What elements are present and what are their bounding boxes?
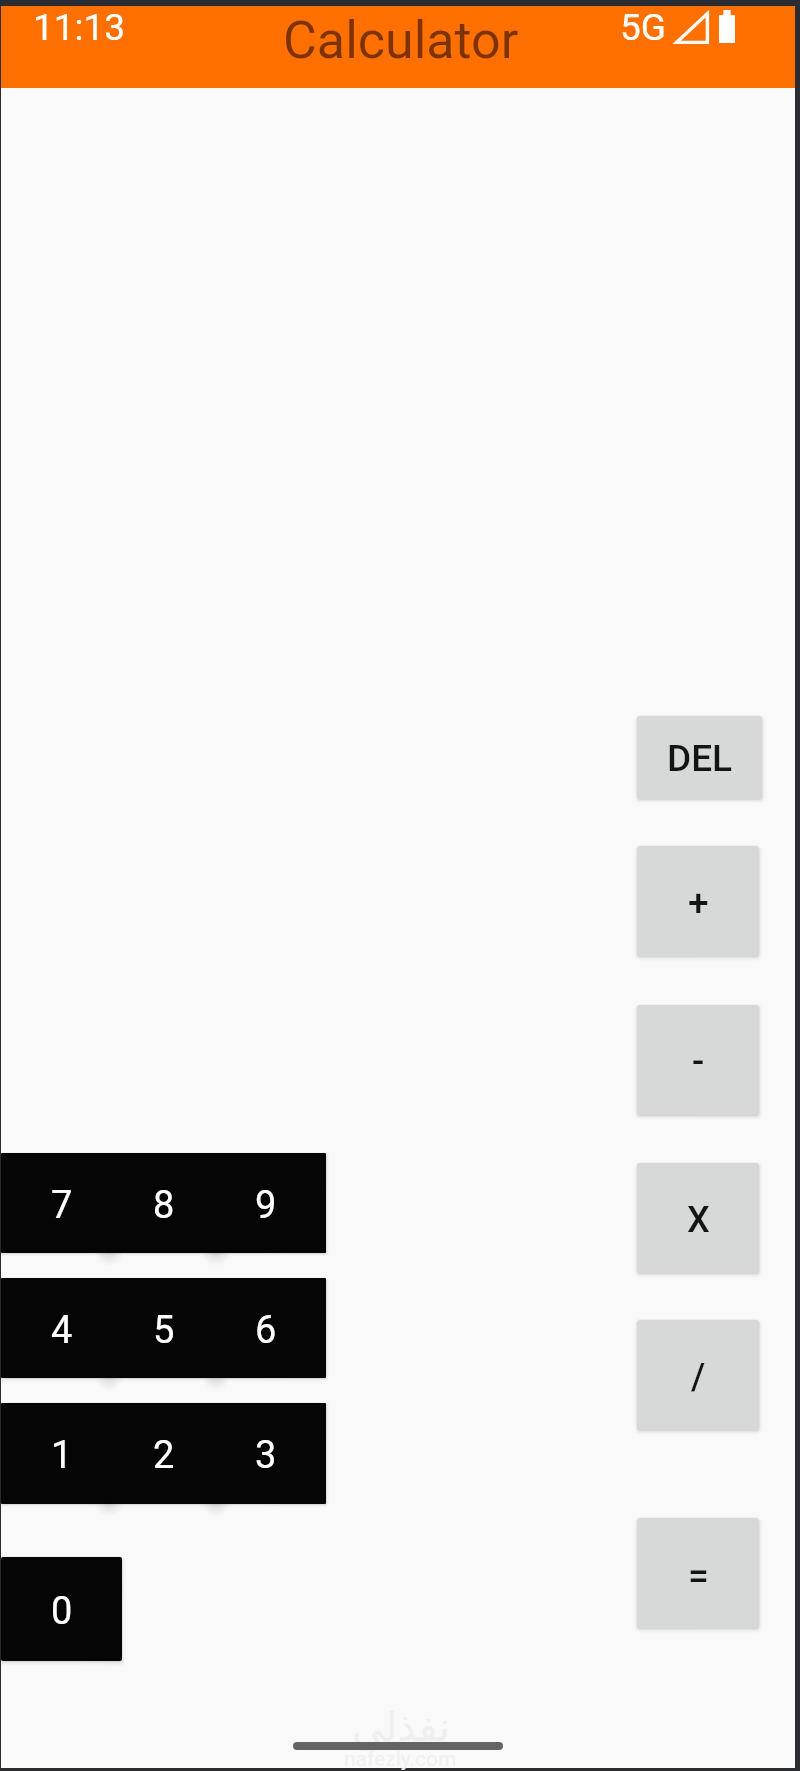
staticText: نفذلي: [352, 1704, 450, 1751]
button[interactable]: 8: [113, 1153, 215, 1253]
staticText: 11:13: [33, 6, 126, 49]
staticText: +: [688, 882, 709, 925]
staticText: DEL: [667, 737, 733, 780]
staticText: 4: [51, 1308, 73, 1353]
button[interactable]: 1: [11, 1403, 113, 1504]
staticText: 1: [51, 1433, 73, 1478]
button[interactable]: 7: [11, 1153, 113, 1253]
staticText: =: [688, 1554, 709, 1597]
button[interactable]: /: [637, 1320, 759, 1430]
staticText: 3: [255, 1433, 277, 1478]
other: Battery full: [719, 10, 735, 43]
button[interactable]: DEL: [637, 716, 762, 799]
staticText: X: [687, 1199, 710, 1241]
staticText: 7: [51, 1183, 73, 1228]
staticText: /: [691, 1356, 706, 1398]
button[interactable]: 9: [215, 1153, 317, 1253]
staticText: nafezly.com: [344, 1747, 457, 1771]
button[interactable]: 5: [113, 1278, 215, 1378]
button[interactable]: 6: [215, 1278, 317, 1378]
staticText: 8: [153, 1183, 175, 1228]
button[interactable]: X: [637, 1163, 759, 1273]
button[interactable]: 2: [113, 1403, 215, 1504]
staticText: -: [692, 1039, 705, 1082]
staticText: 5G: [620, 6, 666, 49]
button[interactable]: 3: [215, 1403, 317, 1504]
staticText: 9: [255, 1183, 277, 1228]
button[interactable]: -: [637, 1005, 759, 1115]
button[interactable]: 4: [11, 1278, 113, 1378]
staticText: 0: [51, 1589, 73, 1634]
other: Mobile signal: [675, 12, 709, 44]
staticText: Calculator: [283, 10, 519, 71]
button[interactable]: 0: [1, 1557, 122, 1661]
staticText: 5: [153, 1308, 175, 1353]
other: Home gesture handle: [293, 1742, 503, 1750]
button[interactable]: +: [637, 846, 759, 956]
button[interactable]: =: [637, 1518, 759, 1628]
staticText: 2: [153, 1433, 175, 1478]
staticText: 6: [255, 1308, 277, 1353]
